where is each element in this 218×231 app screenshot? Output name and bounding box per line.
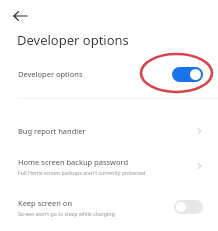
staticText: Bug report handler [18, 126, 194, 136]
button[interactable]: Developer options switch, on [172, 67, 203, 82]
button[interactable]: Developer options [0, 59, 218, 89]
button[interactable]: Back [5, 1, 35, 31]
staticText: Developer options [18, 69, 172, 79]
button[interactable]: Keep screen on switch, off [174, 200, 203, 214]
staticText: Screen won't go to sleep while charging [18, 210, 115, 217]
staticText: Home screen backup password [18, 157, 129, 167]
staticText: Keep screen on [18, 198, 73, 208]
button[interactable]: Keep screen on [0, 193, 218, 221]
button[interactable]: Bug report handler [0, 118, 218, 144]
button[interactable]: Home screen backup password [0, 152, 218, 180]
staticText: Developer options [17, 31, 129, 49]
staticText: Full Home screen backups aren't currentl… [18, 169, 146, 176]
